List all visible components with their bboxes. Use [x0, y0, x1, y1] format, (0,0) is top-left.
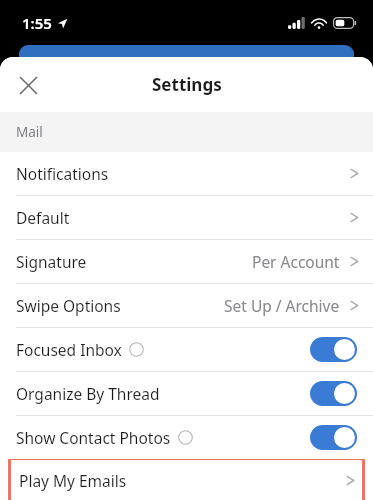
button[interactable]: Close [8, 65, 48, 105]
staticText: Default [16, 207, 70, 228]
staticText: Play My Emails [19, 470, 127, 491]
staticText: Focused Inbox [16, 339, 122, 360]
button[interactable]: Focused Inbox [0, 328, 373, 371]
staticText: Show Contact Photos [16, 427, 171, 448]
staticText: Mail [16, 123, 43, 141]
button[interactable]: Toggle [310, 425, 357, 450]
staticText: Set Up / Archive [224, 295, 340, 316]
button[interactable]: Signature [0, 240, 373, 283]
button[interactable]: Play My Emails [11, 460, 362, 500]
button[interactable]: Swipe Options [0, 284, 373, 327]
staticText: Swipe Options [16, 295, 121, 316]
staticText: Signature [16, 251, 87, 272]
button[interactable]: Toggle [310, 337, 357, 362]
button[interactable]: Organize By Thread [0, 372, 373, 415]
staticText: 1:55 [22, 13, 52, 33]
button[interactable]: Show Contact Photos [0, 416, 373, 459]
staticText: Notifications [16, 163, 109, 184]
button[interactable]: Default [0, 196, 373, 239]
staticText: Organize By Thread [16, 383, 160, 404]
button[interactable]: Toggle [310, 381, 357, 406]
staticText: Settings [152, 73, 222, 96]
button[interactable]: Notifications [0, 152, 373, 195]
staticText: Per Account [252, 251, 340, 272]
